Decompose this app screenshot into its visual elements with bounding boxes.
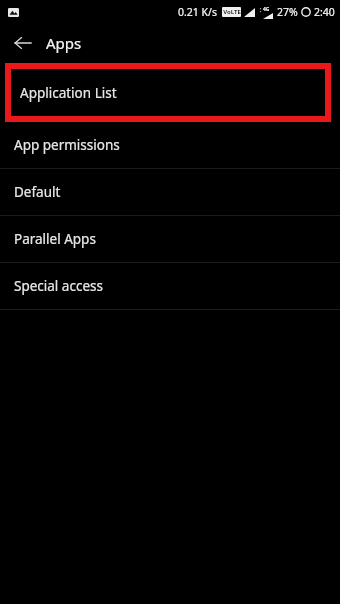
button[interactable]: Parallel Apps bbox=[0, 216, 340, 262]
button[interactable]: Application List bbox=[0, 62, 340, 122]
staticText: 0.21 K/s bbox=[178, 5, 217, 19]
staticText: Special access bbox=[14, 277, 103, 295]
button[interactable]: Back bbox=[0, 24, 46, 62]
button[interactable]: App permissions bbox=[0, 122, 340, 168]
button[interactable]: Default bbox=[0, 169, 340, 215]
staticText: Parallel Apps bbox=[14, 230, 96, 248]
staticText: 27% bbox=[277, 5, 298, 19]
button[interactable]: Special access bbox=[0, 263, 340, 309]
staticText: Apps bbox=[46, 33, 82, 53]
staticText: Application List bbox=[20, 84, 117, 102]
staticText: VoLTE bbox=[223, 8, 241, 16]
staticText: 4G bbox=[263, 6, 270, 13]
staticText: Default bbox=[14, 183, 61, 201]
staticText: App permissions bbox=[14, 136, 120, 154]
staticText: 2:40 bbox=[314, 5, 335, 19]
